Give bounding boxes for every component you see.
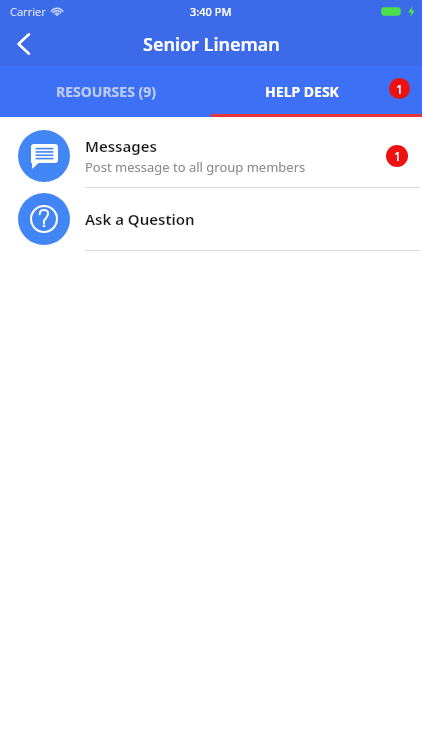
staticText: RESOURSES (9) (56, 82, 156, 101)
staticText: Post message to all group members (85, 158, 306, 176)
button[interactable]: HELP DESK (211, 66, 422, 117)
staticText: Senior Lineman (143, 32, 280, 57)
button[interactable]: Messages (0, 125, 422, 188)
button[interactable]: Ask a Question (0, 188, 422, 251)
button[interactable]: Back (0, 22, 46, 66)
staticText: 3:40 PM (190, 4, 232, 19)
button[interactable]: RESOURSES (9) (0, 66, 211, 117)
staticText: 1 (394, 148, 401, 164)
staticText: 1 (396, 81, 403, 97)
staticText: Messages (85, 136, 157, 156)
staticText: Ask a Question (85, 209, 195, 229)
staticText: Carrier (10, 4, 46, 19)
staticText: HELP DESK (265, 82, 339, 101)
